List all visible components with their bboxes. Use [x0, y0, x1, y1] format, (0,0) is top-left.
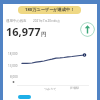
staticText: つみたて: [44, 87, 57, 91]
staticText: 評価額: [70, 86, 79, 90]
staticText: 18,000: [8, 52, 18, 56]
staticText: 2021年7月20日時点: [33, 19, 61, 23]
button[interactable]: [18, 95, 31, 99]
staticText: 円: [41, 31, 47, 38]
staticText: 180万ユーザーが達成中！: [25, 7, 75, 13]
staticText: 16,977: [6, 24, 41, 39]
staticText: 運用中の残高: [6, 19, 27, 23]
staticText: 8,000: [10, 75, 18, 79]
button[interactable]: 180万ユーザーが達成中！: [18, 6, 81, 14]
staticText: 13,000: [8, 64, 18, 68]
button[interactable]: 増加: [80, 22, 95, 37]
